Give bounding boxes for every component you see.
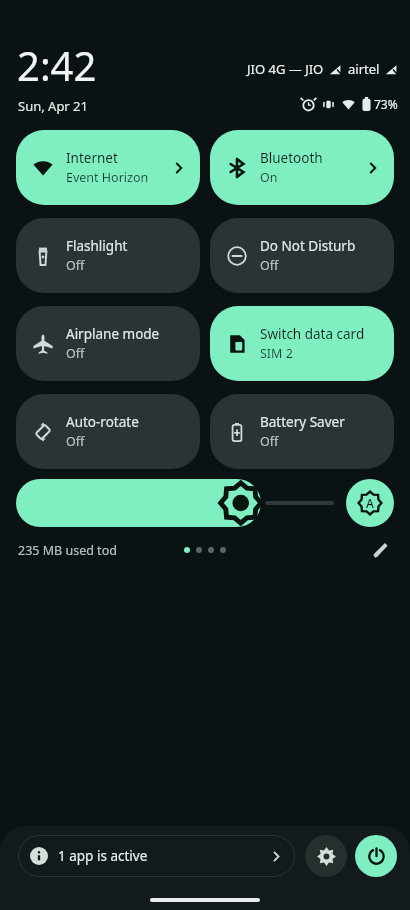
staticText: SIM 2	[260, 345, 293, 362]
staticText: Battery Saver	[260, 413, 345, 431]
staticText: Flashlight	[66, 237, 128, 255]
staticText: 1 app is active	[58, 847, 270, 865]
staticText: Do Not Disturb	[260, 237, 356, 255]
button[interactable]: Internet	[16, 130, 200, 205]
staticText: Sun, Apr 21	[18, 97, 88, 115]
staticText: Bluetooth	[260, 149, 323, 167]
button[interactable]: Edit tiles	[368, 538, 392, 562]
staticText: Airplane mode	[66, 325, 160, 343]
button[interactable]: Brightness	[16, 479, 332, 527]
staticText: On	[260, 169, 278, 186]
button[interactable]: Switch data card	[210, 306, 394, 381]
staticText: Auto-rotate	[66, 413, 139, 431]
button[interactable]: Do Not Disturb	[210, 218, 394, 293]
button[interactable]: Airplane mode	[16, 306, 200, 381]
staticText: Internet	[66, 149, 118, 167]
button[interactable]: Battery Saver	[210, 394, 394, 469]
staticText: 2:42	[17, 38, 97, 92]
staticText: JIO 4G — JIO	[247, 60, 324, 78]
button[interactable]: Settings	[305, 835, 347, 877]
button[interactable]: Bluetooth	[210, 130, 394, 205]
staticText: Off	[260, 257, 279, 274]
staticText: Event Horizon	[66, 169, 149, 186]
staticText: Switch data card	[260, 325, 365, 343]
staticText: Off	[260, 433, 279, 450]
button[interactable]: Flashlight	[16, 218, 200, 293]
staticText: 235 MB used tod	[18, 542, 117, 559]
staticText: 73%	[374, 96, 398, 112]
staticText: A	[366, 495, 374, 511]
staticText: Off	[66, 257, 85, 274]
button[interactable]: Power	[355, 835, 397, 877]
button[interactable]: Auto-rotate	[16, 394, 200, 469]
button[interactable]: 1 app is active	[18, 835, 295, 877]
button[interactable]: Auto brightness	[346, 479, 394, 527]
staticText: Off	[66, 433, 85, 450]
staticText: airtel	[348, 60, 380, 78]
staticText: Off	[66, 345, 85, 362]
